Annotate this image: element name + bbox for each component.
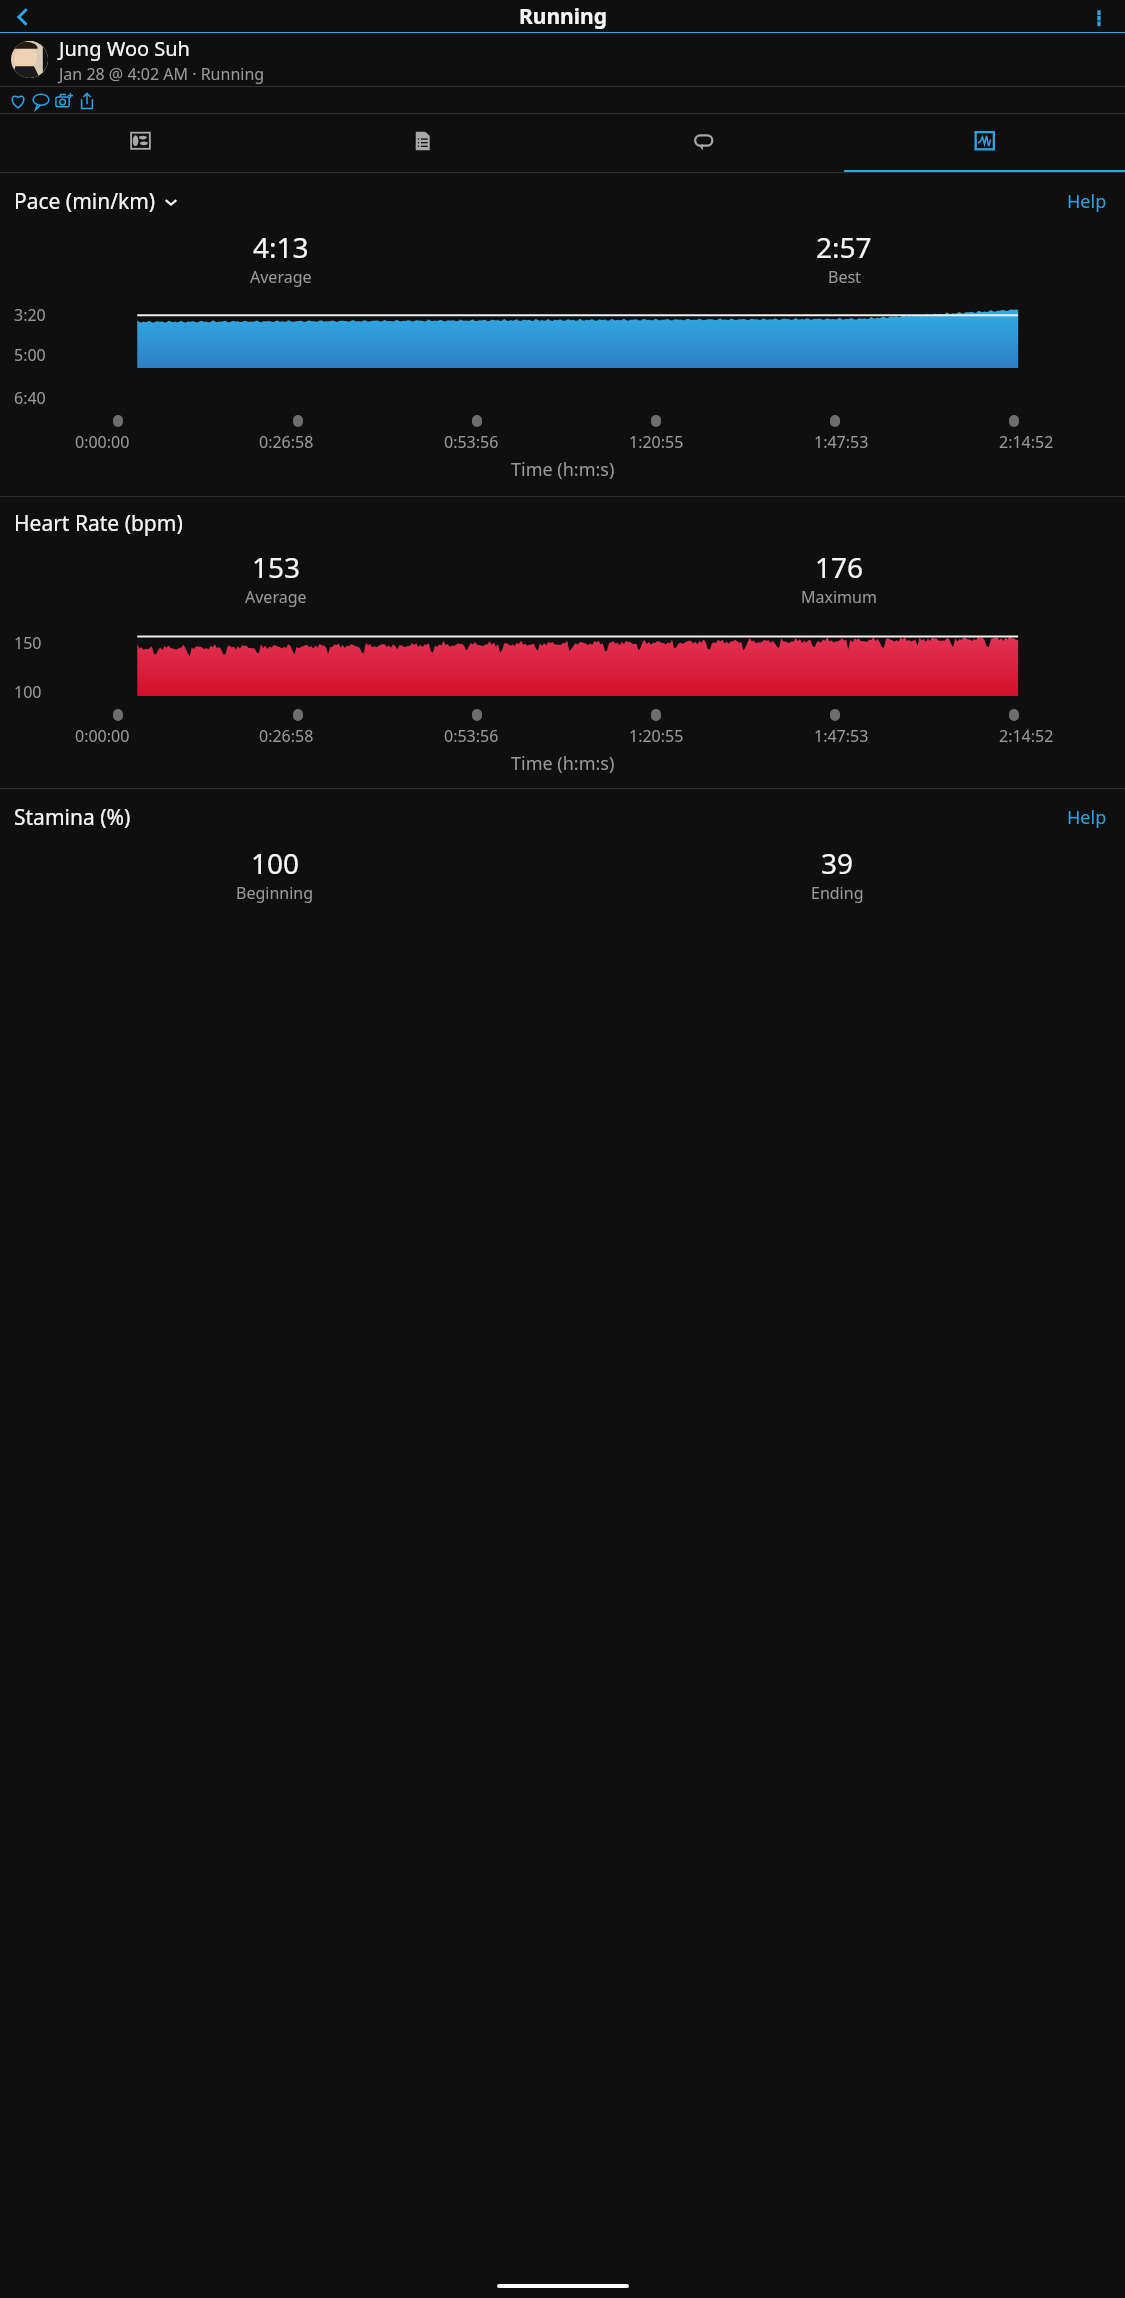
staticText: 153 (252, 548, 301, 586)
button[interactable]: Like (6, 89, 29, 112)
staticText: Maximum (801, 586, 877, 608)
staticText: 1:47:53 (814, 431, 869, 453)
button[interactable]: Help (1063, 185, 1111, 218)
button[interactable]: Laps (563, 114, 844, 172)
staticText: 0:00:00 (75, 725, 130, 747)
staticText: 150 (14, 632, 42, 654)
staticText: 1:47:53 (814, 725, 869, 747)
staticText: 5:00 (14, 344, 46, 366)
staticText: 2:57 (816, 228, 872, 266)
button[interactable]: Map (0, 114, 282, 172)
staticText: Running (519, 2, 607, 31)
staticText: 1:20:55 (629, 431, 684, 453)
button[interactable]: Details (282, 114, 563, 172)
staticText: Time (h:m:s) (511, 751, 615, 776)
button[interactable]: Jung Woo Suh (0, 33, 1125, 86)
button[interactable]: More options (1085, 3, 1113, 31)
staticText: 100 (14, 681, 42, 703)
staticText: Jan 28 @ 4:02 AM · Running (59, 63, 265, 85)
button[interactable]: Comment (29, 89, 52, 112)
staticText: 4:13 (253, 228, 309, 266)
staticText: 100 (251, 844, 300, 882)
staticText: Help (1067, 189, 1107, 214)
staticText: Jung Woo Suh (59, 35, 190, 62)
staticText: Stamina (%) (14, 803, 131, 832)
staticText: 0:00:00 (75, 431, 130, 453)
staticText: 3:20 (14, 304, 46, 326)
staticText: 2:14:52 (999, 431, 1054, 453)
staticText: Ending (811, 882, 864, 904)
staticText: 39 (821, 844, 854, 882)
button[interactable]: Charts (844, 114, 1125, 172)
button[interactable]: Change metric (164, 195, 178, 209)
staticText: Time (h:m:s) (511, 457, 615, 482)
staticText: 0:26:58 (259, 431, 314, 453)
button[interactable]: Share (75, 89, 98, 112)
staticText: 0:53:56 (444, 431, 499, 453)
staticText: Average (250, 266, 312, 288)
staticText: Help (1067, 805, 1107, 830)
staticText: 2:14:52 (999, 725, 1054, 747)
button[interactable]: Add photo (52, 89, 75, 112)
staticText: Best (828, 266, 861, 288)
staticText: Pace (min/km) (14, 187, 156, 216)
staticText: Beginning (236, 882, 314, 904)
staticText: 176 (815, 548, 864, 586)
staticText: 1:20:55 (629, 725, 684, 747)
button[interactable]: Help (1063, 801, 1111, 834)
button[interactable]: Back (8, 2, 38, 32)
staticText: 6:40 (14, 387, 46, 409)
staticText: Heart Rate (bpm) (14, 509, 183, 538)
staticText: 0:26:58 (259, 725, 314, 747)
staticText: Average (245, 586, 307, 608)
staticText: 0:53:56 (444, 725, 499, 747)
